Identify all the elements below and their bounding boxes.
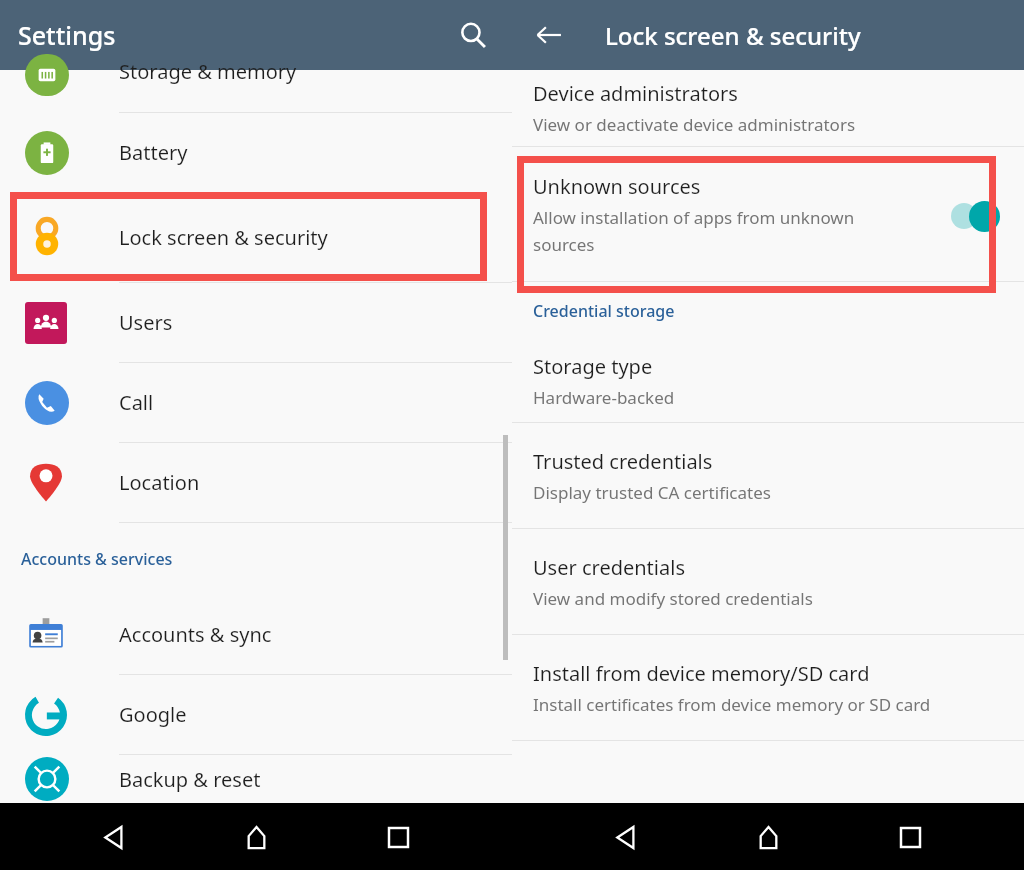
button[interactable]: Google <box>0 675 512 754</box>
staticText: Credential storage <box>533 300 675 322</box>
staticText: Backup & reset <box>119 766 261 793</box>
button[interactable]: Call <box>0 363 512 442</box>
staticText: Install certificates from device memory … <box>533 693 931 716</box>
button[interactable]: Unknown sources <box>512 147 1024 281</box>
button[interactable]: User credentials <box>512 529 1024 634</box>
button[interactable]: Recents <box>370 809 426 865</box>
staticText: View and modify stored credentials <box>533 587 813 610</box>
staticText: Users <box>119 309 173 336</box>
staticText: Unknown sources <box>533 173 701 200</box>
button[interactable]: Backup & reset <box>0 755 512 803</box>
button[interactable]: Trusted credentials <box>512 423 1024 528</box>
button[interactable]: Storage type <box>512 340 1024 422</box>
staticText: Hardware-backed <box>533 386 675 409</box>
button[interactable]: Home <box>228 809 284 865</box>
button[interactable]: Back <box>526 12 572 58</box>
staticText: Device administrators <box>533 80 738 107</box>
button[interactable]: Search <box>450 12 496 58</box>
button[interactable]: Back <box>598 809 654 865</box>
staticText: Settings <box>18 18 116 52</box>
button[interactable]: Install from device memory/SD card <box>512 635 1024 740</box>
button[interactable]: Users <box>0 283 512 362</box>
staticText: Location <box>119 469 200 496</box>
button[interactable]: Device administrators <box>512 70 1024 146</box>
button[interactable]: Home <box>740 809 796 865</box>
staticText: Accounts & services <box>21 548 173 570</box>
staticText: Storage & memory <box>119 58 297 85</box>
button[interactable]: Lock screen & security <box>0 192 512 282</box>
button[interactable]: Battery <box>0 113 512 192</box>
staticText: User credentials <box>533 554 685 581</box>
staticText: Install from device memory/SD card <box>533 660 870 687</box>
staticText: Lock screen & security <box>119 224 328 251</box>
staticText: Trusted credentials <box>533 448 713 475</box>
staticText: Call <box>119 389 154 416</box>
button[interactable]: Storage & memory <box>0 70 512 112</box>
staticText: Google <box>119 701 187 728</box>
button[interactable]: Back <box>86 809 142 865</box>
staticText: Display trusted CA certificates <box>533 481 771 504</box>
button[interactable]: Location <box>0 443 512 522</box>
button[interactable]: Recents <box>882 809 938 865</box>
staticText: View or deactivate device administrators <box>533 113 856 136</box>
staticText: Lock screen & security <box>605 19 861 52</box>
button[interactable]: Unknown sources toggle <box>949 199 1007 233</box>
staticText: Accounts & sync <box>119 621 272 648</box>
button[interactable]: Accounts & sync <box>0 595 512 674</box>
staticText: Storage type <box>533 353 653 380</box>
staticText: Battery <box>119 139 188 166</box>
staticText: Allow installation of apps from unknown … <box>533 206 894 256</box>
